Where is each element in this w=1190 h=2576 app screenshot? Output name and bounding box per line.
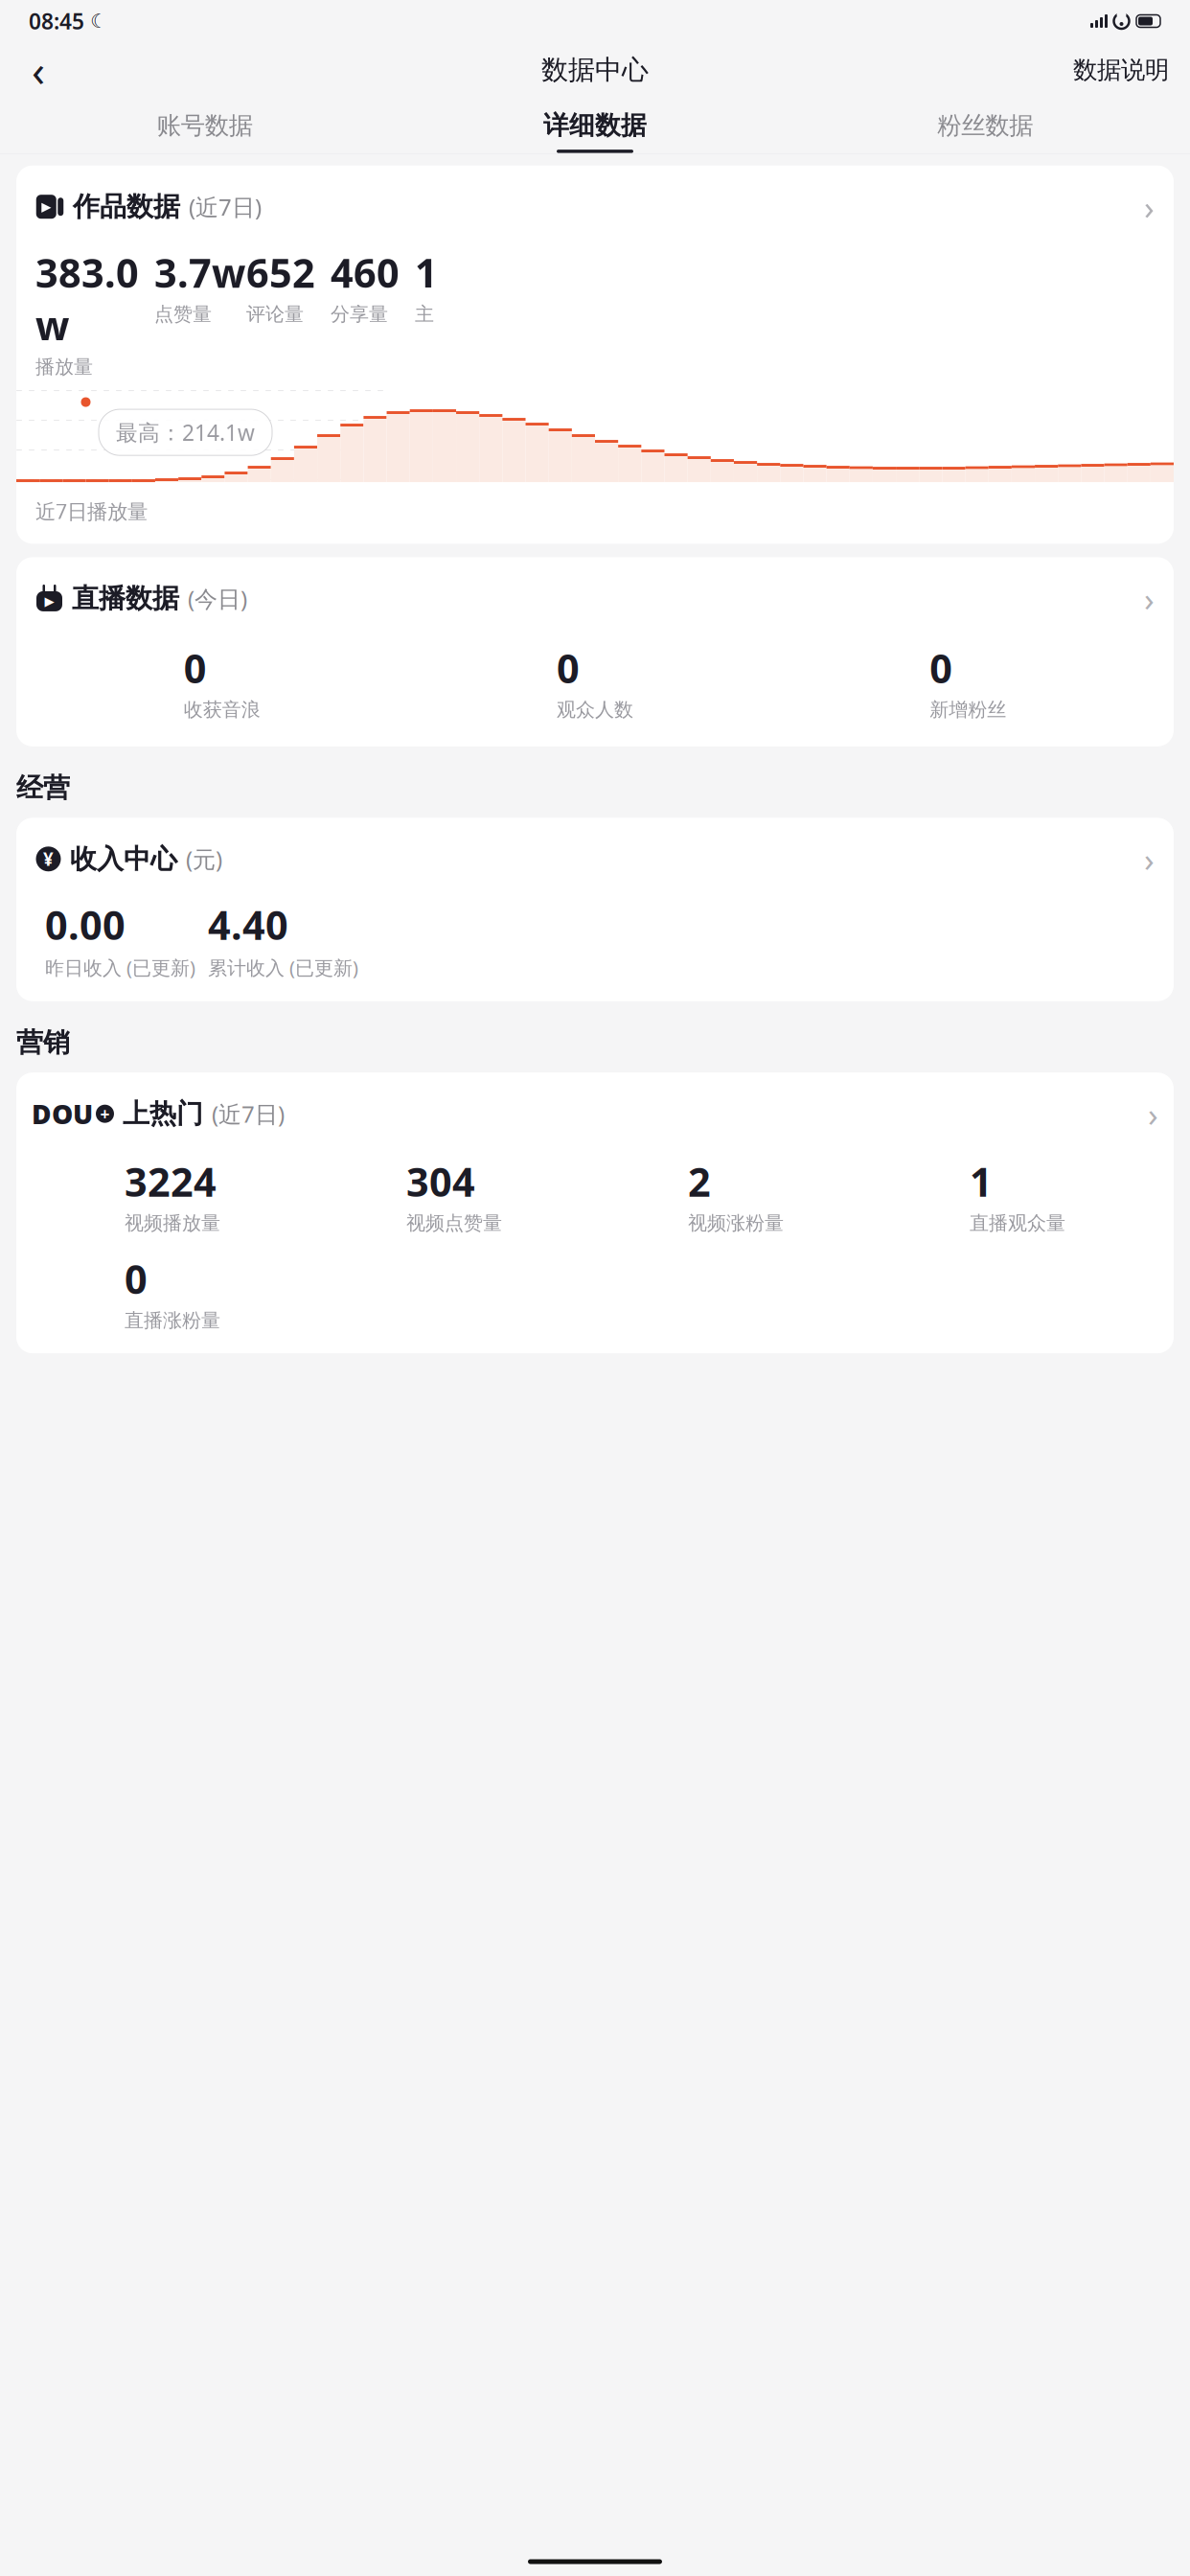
staticText: 0 xyxy=(930,642,953,694)
staticText: ☾ xyxy=(90,10,107,32)
staticText: 累计收入 (已更新) xyxy=(208,955,358,980)
staticText: 08:45 xyxy=(29,7,84,35)
staticText: 直播数据 xyxy=(72,582,179,615)
staticText: 收获音浪 xyxy=(184,698,260,722)
button[interactable]: ▶ xyxy=(16,166,1174,544)
staticText: › xyxy=(1144,576,1155,620)
staticText: 0 xyxy=(184,642,207,694)
staticText: ▶ xyxy=(41,200,51,214)
staticText: 收入中心 xyxy=(70,842,177,875)
staticText: 视频涨粉量 xyxy=(688,1211,784,1235)
staticText: 数据中心 xyxy=(541,53,649,86)
staticText: 主 xyxy=(415,302,434,326)
button[interactable]: 详细数据 xyxy=(400,98,790,153)
staticText: 评论量 xyxy=(246,302,304,326)
staticText: › xyxy=(1144,185,1155,229)
staticText: 上热门 xyxy=(123,1097,203,1130)
button[interactable]: 账号数据 xyxy=(10,99,400,152)
staticText: 1 xyxy=(415,246,438,299)
button[interactable]: ¥ xyxy=(16,818,1174,1001)
button[interactable]: 数据说明 xyxy=(1069,49,1173,91)
staticText: (近7日) xyxy=(212,1098,285,1129)
staticText: 652 xyxy=(246,246,315,299)
staticText: (元) xyxy=(186,844,222,874)
staticText: 粉丝数据 xyxy=(937,111,1033,140)
staticText: 直播观众量 xyxy=(970,1211,1065,1235)
staticText: 3224 xyxy=(125,1155,217,1208)
staticText: 昨日收入 (已更新) xyxy=(45,955,195,980)
staticText: › xyxy=(1148,1092,1158,1136)
button[interactable]: 粉丝数据 xyxy=(790,99,1180,152)
staticText: 视频点赞量 xyxy=(406,1211,502,1235)
staticText: 营销 xyxy=(16,1026,70,1059)
staticText: + xyxy=(100,1103,110,1125)
staticText: (近7日) xyxy=(189,191,262,222)
staticText: › xyxy=(1144,837,1155,881)
button[interactable]: DOU xyxy=(16,1073,1174,1353)
staticText: 383.0w xyxy=(35,246,139,351)
staticText: 1 xyxy=(970,1155,993,1208)
staticText: 数据说明 xyxy=(1073,55,1169,85)
staticText: 0.00 xyxy=(45,898,126,951)
button[interactable]: 返回 xyxy=(17,49,59,91)
staticText: 作品数据 xyxy=(73,190,180,223)
staticText: ‹ xyxy=(32,41,45,99)
staticText: 账号数据 xyxy=(157,111,253,140)
staticText: (今日) xyxy=(188,583,247,614)
staticText: 2 xyxy=(688,1155,711,1208)
staticText: 4.40 xyxy=(208,898,288,951)
staticText: 观众人数 xyxy=(557,698,633,722)
staticText: ▶ xyxy=(45,594,54,609)
staticText: 视频播放量 xyxy=(125,1211,220,1235)
staticText: 0 xyxy=(557,642,580,694)
staticText: 播放量 xyxy=(35,355,93,379)
staticText: 460 xyxy=(331,246,400,299)
staticText: 304 xyxy=(406,1155,475,1208)
staticText: 新增粉丝 xyxy=(930,698,1006,722)
staticText: 分享量 xyxy=(331,302,388,326)
staticText: ¥ xyxy=(43,847,54,871)
staticText: 经营 xyxy=(16,771,70,804)
staticText: 最高：214.1w xyxy=(116,418,255,447)
staticText: 0 xyxy=(125,1252,148,1305)
staticText: 直播涨粉量 xyxy=(125,1309,220,1332)
staticText: 3.7w xyxy=(154,246,245,299)
staticText: 近7日播放量 xyxy=(35,497,148,525)
staticText: 详细数据 xyxy=(543,110,647,141)
staticText: DOU xyxy=(32,1096,93,1132)
staticText: 点赞量 xyxy=(154,302,212,326)
button[interactable]: ▶ xyxy=(16,557,1174,746)
